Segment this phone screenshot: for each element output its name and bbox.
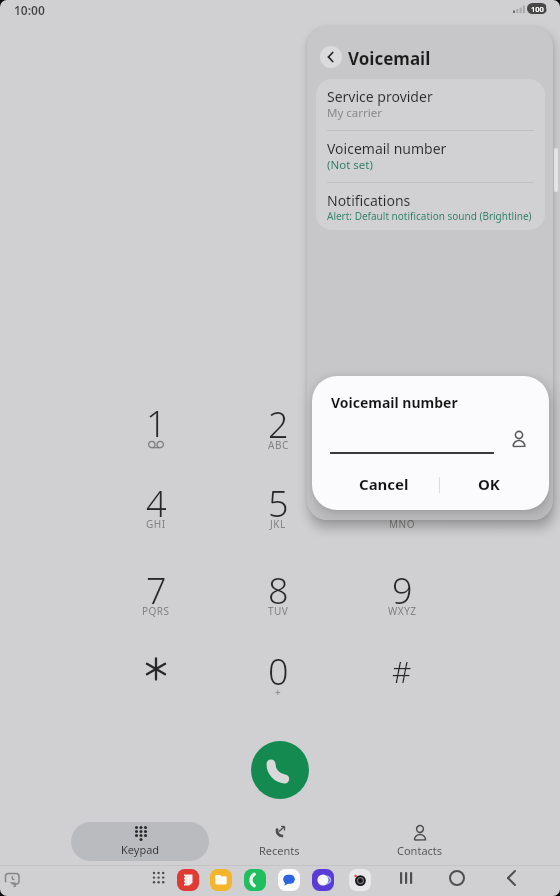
staticText: 100 — [531, 4, 544, 14]
staticText: JKL — [270, 517, 286, 531]
button[interactable]: 2 — [228, 396, 328, 452]
staticText: (Not set) — [327, 157, 373, 173]
button[interactable]: 8 — [228, 562, 328, 618]
staticText: PQRS — [142, 604, 170, 618]
staticText: 0 — [268, 647, 289, 696]
staticText: 8 — [268, 566, 289, 615]
button[interactable]: Recents — [229, 820, 329, 862]
staticText: 6 — [392, 479, 413, 528]
staticText: Voicemail — [348, 47, 431, 70]
staticText: Keypad — [121, 842, 160, 857]
staticText: 9 — [392, 566, 413, 615]
staticText: Alert: Default notification sound (Brigh… — [327, 209, 532, 223]
button[interactable]: 7 — [106, 562, 206, 618]
button[interactable] — [498, 864, 526, 892]
button[interactable] — [209, 868, 233, 892]
staticText: Contacts — [397, 843, 443, 858]
staticText: 7 — [146, 566, 167, 615]
staticText: 1 — [146, 399, 167, 448]
staticText: # — [392, 651, 412, 692]
staticText: Notifications — [327, 191, 411, 210]
staticText: + — [275, 685, 282, 699]
staticText: 3 — [392, 400, 413, 449]
button[interactable] — [243, 868, 267, 892]
staticText: Service provider — [327, 87, 433, 106]
button[interactable] — [106, 641, 206, 697]
button[interactable]: 0 — [228, 643, 328, 699]
button[interactable] — [316, 131, 545, 182]
button[interactable]: Contacts — [370, 820, 470, 862]
button[interactable] — [251, 741, 309, 799]
button[interactable] — [320, 46, 342, 68]
staticText: My carrier — [327, 105, 382, 121]
staticText: 5 — [268, 479, 289, 528]
staticText: WXYZ — [388, 604, 417, 618]
staticText: ABC — [268, 438, 289, 452]
staticText: Voicemail number — [327, 139, 447, 158]
button[interactable] — [392, 864, 420, 892]
staticText: Voicemail number — [331, 393, 458, 412]
button[interactable]: OK — [444, 468, 534, 500]
button[interactable]: 5 — [228, 475, 328, 531]
button[interactable]: 1 — [106, 395, 206, 451]
button[interactable] — [176, 868, 200, 892]
staticText: 4 — [146, 479, 167, 528]
button[interactable]: Keypad — [71, 822, 209, 861]
staticText: MNO — [389, 517, 415, 531]
button[interactable]: 9 — [352, 562, 452, 618]
staticText: GHI — [146, 517, 166, 531]
button[interactable]: 6 — [352, 475, 452, 531]
button[interactable]: 4 — [106, 475, 206, 531]
button[interactable] — [277, 868, 301, 892]
button[interactable] — [316, 79, 545, 130]
button[interactable]: # — [352, 643, 452, 699]
button[interactable] — [316, 183, 545, 230]
staticText: OK — [478, 474, 500, 494]
staticText: Cancel — [359, 474, 409, 494]
staticText: TUV — [268, 604, 289, 618]
button[interactable]: Cancel — [334, 468, 434, 500]
staticText: 2 — [268, 400, 289, 449]
button[interactable]: 3 — [352, 396, 452, 452]
button[interactable] — [311, 868, 335, 892]
staticText: Recents — [259, 843, 300, 858]
button[interactable] — [443, 864, 471, 892]
staticText: 10:00 — [14, 2, 45, 18]
button[interactable] — [348, 868, 372, 892]
